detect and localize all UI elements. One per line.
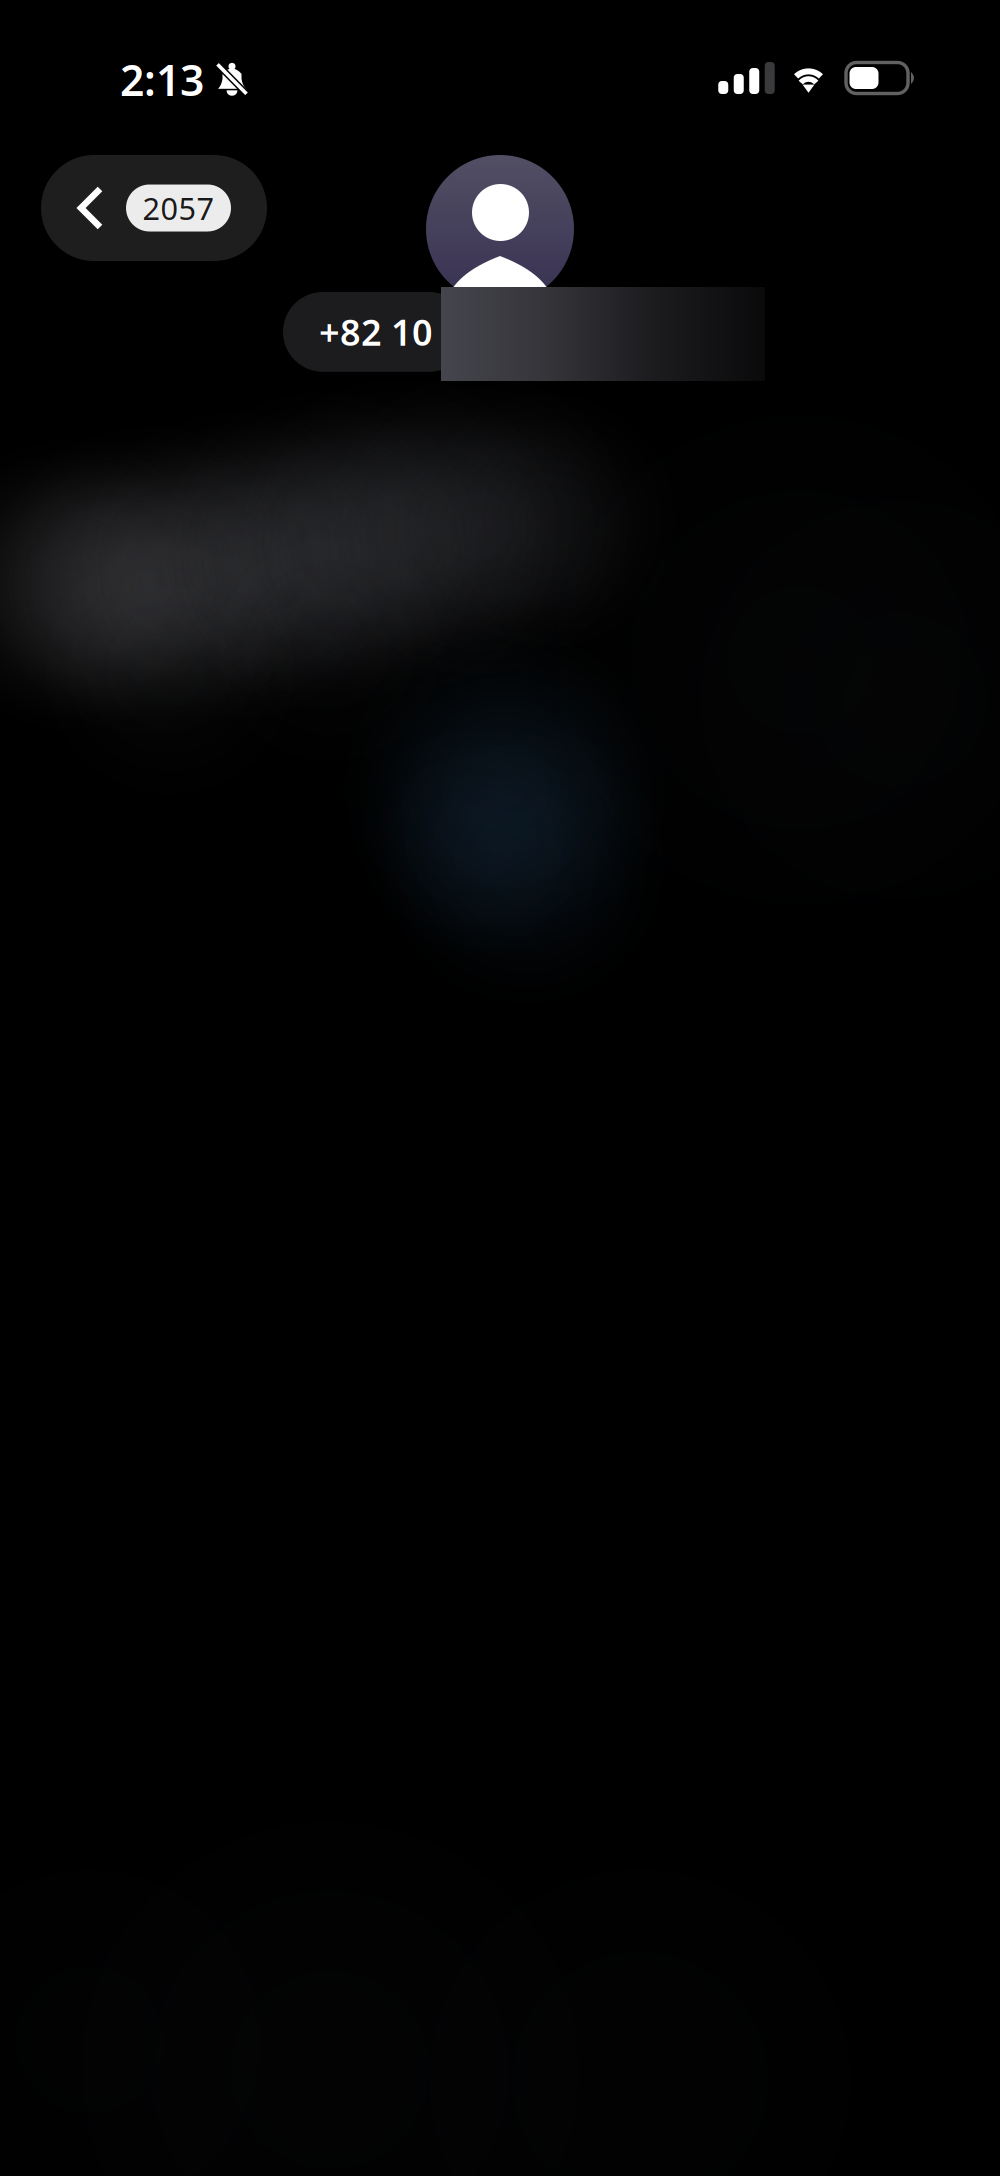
staticText: 2057 [142, 188, 214, 228]
staticText: 2:13 [120, 51, 204, 108]
button[interactable]: Back [41, 155, 267, 261]
staticText: +82 10 [319, 308, 433, 356]
